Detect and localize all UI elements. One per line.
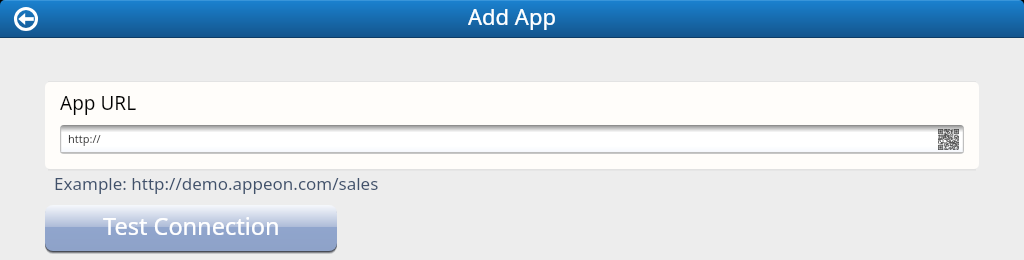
button[interactable]: http://: [60, 125, 964, 154]
staticText: Example: http://demo.appeon.com/sales: [54, 172, 379, 195]
staticText: App URL: [60, 90, 137, 116]
button[interactable]: Scan QR code: [938, 129, 959, 150]
staticText: http://: [68, 131, 101, 146]
staticText: Add App: [468, 1, 556, 31]
button[interactable]: Test Connection: [45, 205, 337, 251]
button[interactable]: Back: [14, 7, 38, 31]
staticText: Test Connection: [103, 210, 280, 242]
